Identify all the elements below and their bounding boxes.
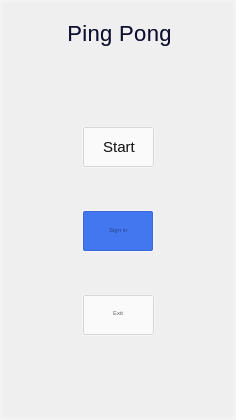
staticText: Sign in: [109, 227, 128, 234]
button[interactable]: Sign in: [83, 211, 153, 251]
staticText: Ping Pong: [67, 21, 172, 46]
staticText: Exit: [113, 310, 124, 317]
staticText: Start: [103, 138, 135, 155]
button[interactable]: Exit: [83, 295, 154, 335]
staticText: Start: [103, 138, 135, 155]
button[interactable]: Start: [83, 127, 154, 167]
staticText: Ping Pong: [67, 21, 172, 46]
